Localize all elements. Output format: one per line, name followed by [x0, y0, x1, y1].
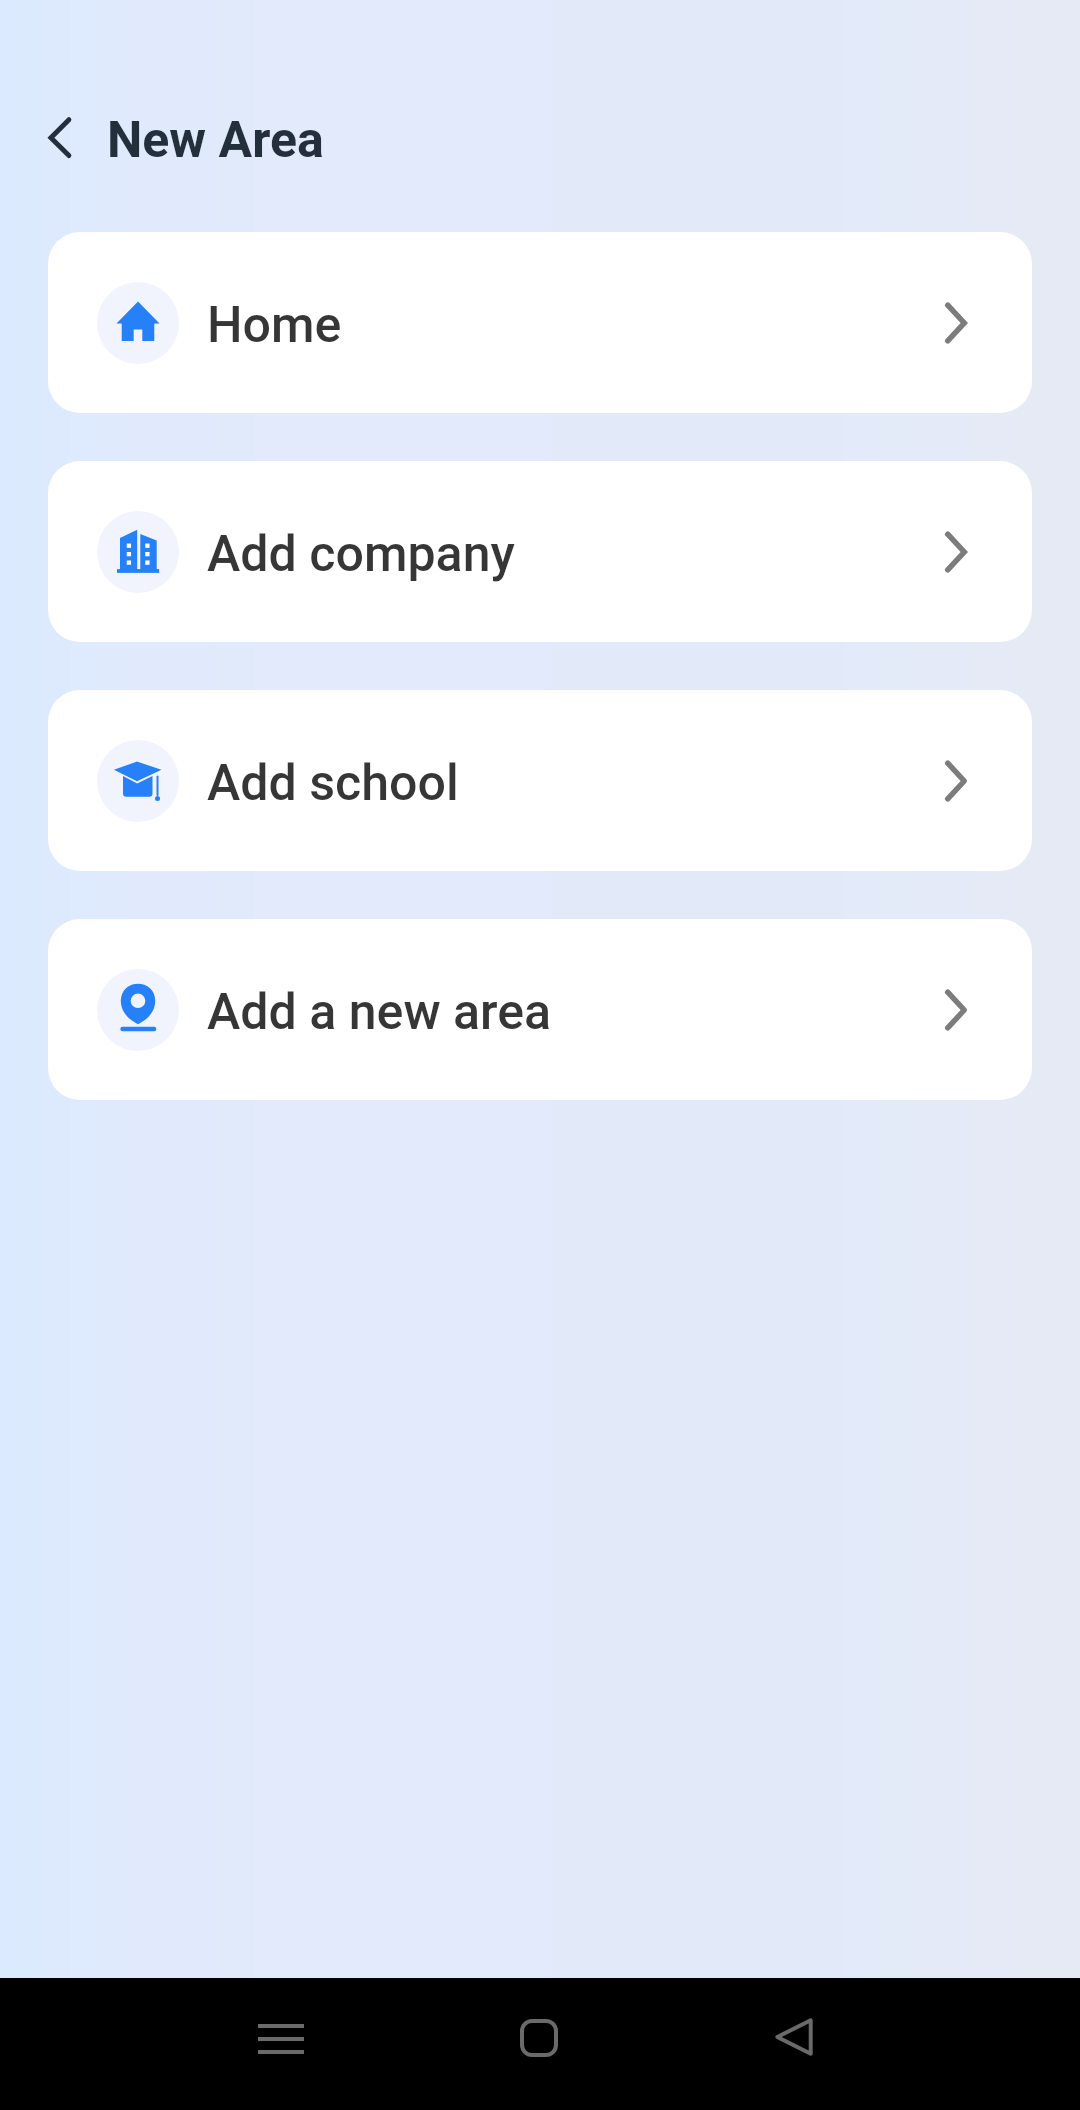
staticText: Home — [207, 296, 342, 355]
button[interactable]: Add school — [48, 690, 1032, 871]
button[interactable]: Home — [48, 232, 1032, 413]
button[interactable]: Add a new area — [48, 919, 1032, 1100]
button[interactable]: Back — [746, 1989, 842, 2085]
staticText: Add a new area — [207, 983, 552, 1042]
staticText: New Area — [107, 111, 324, 170]
button[interactable]: Add company — [48, 461, 1032, 642]
button[interactable]: Recent apps — [233, 1991, 329, 2087]
button[interactable]: Back — [37, 112, 89, 164]
staticText: Add company — [207, 525, 515, 584]
button[interactable]: Home — [491, 1990, 587, 2086]
staticText: Add school — [207, 754, 459, 813]
